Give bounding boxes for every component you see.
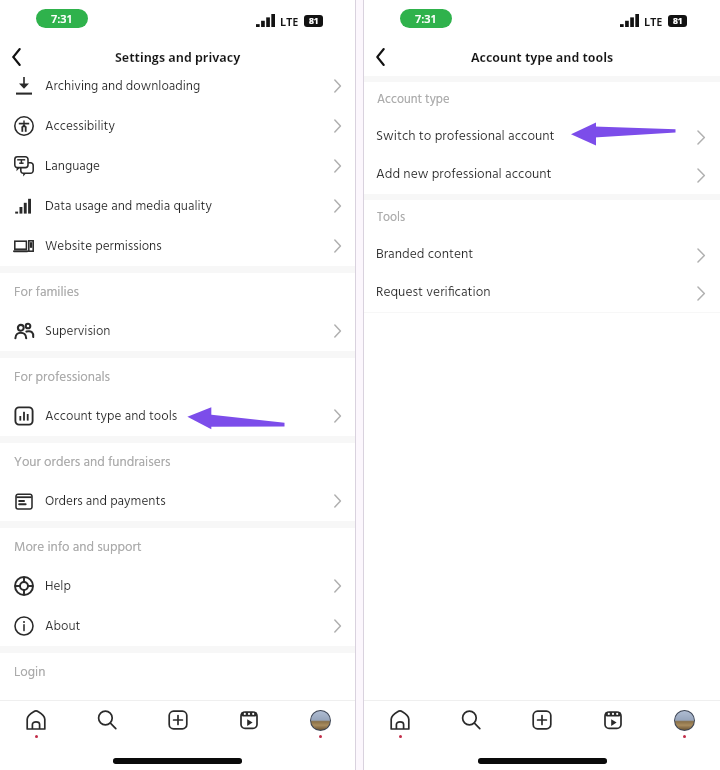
- button[interactable]: Profile: [302, 701, 338, 737]
- staticText: Your orders and fundraisers: [14, 452, 171, 473]
- staticText: Tools: [377, 208, 406, 228]
- button[interactable]: Supervision: [0, 311, 355, 351]
- button[interactable]: Switch to professional account: [364, 118, 720, 156]
- staticText: Account type and tools: [45, 406, 178, 427]
- staticText: Login: [14, 662, 46, 683]
- button[interactable]: Data usage and media quality: [0, 186, 355, 226]
- staticText: Supervision: [45, 321, 111, 342]
- button[interactable]: Reels: [595, 701, 631, 737]
- staticText: 81: [673, 15, 683, 27]
- button[interactable]: Branded content: [364, 236, 720, 274]
- button[interactable]: Help: [0, 566, 355, 606]
- staticText: Website permissions: [45, 236, 162, 257]
- button[interactable]: Create: [524, 701, 560, 737]
- button[interactable]: Profile: [666, 701, 702, 737]
- staticText: For professionals: [14, 367, 111, 388]
- staticText: Archiving and downloading: [45, 76, 201, 97]
- staticText: Switch to professional account: [376, 126, 555, 148]
- button[interactable]: Home: [18, 701, 54, 737]
- button[interactable]: Search: [89, 701, 125, 737]
- button[interactable]: Home: [382, 701, 418, 737]
- button[interactable]: Accessibility: [0, 106, 355, 146]
- button[interactable]: Account type and tools: [0, 396, 355, 436]
- button[interactable]: Orders and payments: [0, 481, 355, 521]
- staticText: Account type: [377, 90, 450, 110]
- button[interactable]: Back: [365, 42, 395, 72]
- button[interactable]: Language: [0, 146, 355, 186]
- staticText: Account type and tools: [471, 49, 614, 66]
- button[interactable]: Reels: [231, 701, 267, 737]
- button[interactable]: Add new professional account: [364, 156, 720, 194]
- staticText: Language: [45, 156, 100, 177]
- staticText: Settings and privacy: [115, 49, 241, 66]
- staticText: Request verification: [376, 282, 491, 304]
- staticText: About: [45, 616, 81, 637]
- button[interactable]: Create: [160, 701, 196, 737]
- staticText: More info and support: [14, 537, 142, 558]
- staticText: Accessibility: [45, 116, 115, 137]
- staticText: 81: [309, 15, 319, 27]
- staticText: LTE: [280, 14, 299, 29]
- staticText: Data usage and media quality: [45, 196, 212, 217]
- button[interactable]: Back: [1, 42, 31, 72]
- button[interactable]: Archiving and downloading: [0, 66, 355, 106]
- staticText: Orders and payments: [45, 491, 166, 512]
- button[interactable]: Search: [453, 701, 489, 737]
- staticText: Help: [45, 576, 71, 597]
- button[interactable]: Website permissions: [0, 226, 355, 266]
- button[interactable]: Request verification: [364, 274, 720, 312]
- staticText: 7:31: [415, 11, 437, 26]
- staticText: Branded content: [376, 244, 474, 266]
- staticText: 7:31: [51, 11, 73, 26]
- staticText: LTE: [644, 14, 663, 29]
- staticText: Add new professional account: [376, 164, 552, 186]
- staticText: For families: [14, 282, 80, 303]
- button[interactable]: About: [0, 606, 355, 646]
